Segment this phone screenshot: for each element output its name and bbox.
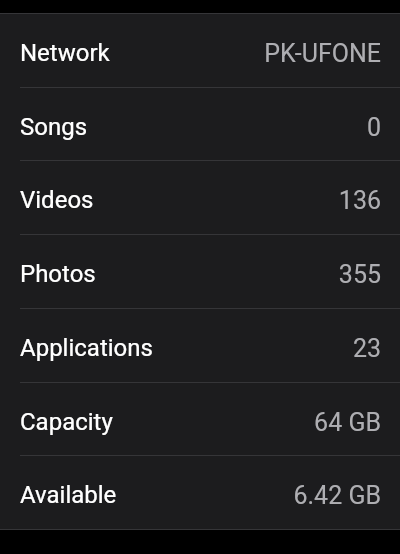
button[interactable]: Network (0, 13, 400, 87)
staticText: 136 (338, 186, 381, 215)
staticText: 23 (352, 334, 381, 363)
staticText: Capacity (20, 408, 113, 436)
button[interactable]: Applications (0, 308, 400, 382)
other: Device information (0, 0, 400, 554)
staticText: Songs (20, 113, 88, 141)
staticText: 64 GB (314, 408, 381, 437)
button[interactable]: Videos (0, 160, 400, 234)
staticText: PK-UFONE (264, 39, 381, 68)
button[interactable]: Songs (0, 87, 400, 161)
button[interactable]: Capacity (0, 382, 400, 456)
staticText: 355 (338, 260, 381, 289)
staticText: Network (20, 39, 110, 67)
staticText: Applications (20, 334, 153, 362)
staticText: Available (20, 481, 117, 509)
staticText: Videos (20, 186, 94, 214)
staticText: Photos (20, 260, 96, 288)
button[interactable]: Photos (0, 234, 400, 308)
staticText: 0 (366, 113, 381, 142)
button[interactable]: Available (0, 455, 400, 529)
staticText: 6.42 GB (293, 481, 381, 510)
